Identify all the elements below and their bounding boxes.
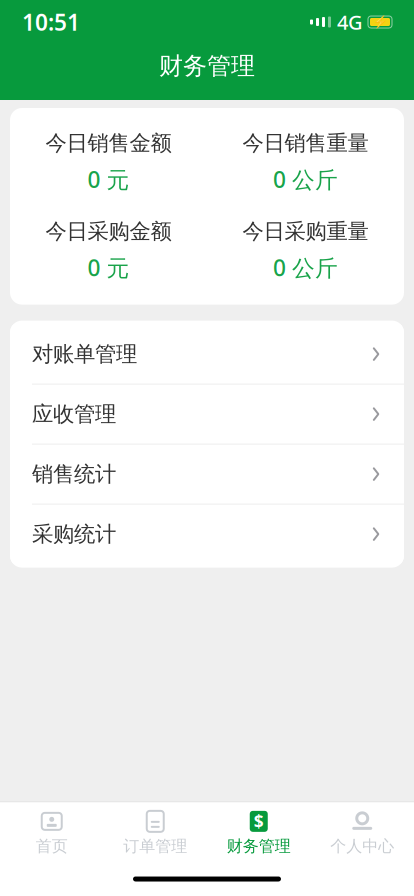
staticText: 应收管理 bbox=[32, 401, 116, 427]
staticText: 首页 bbox=[36, 836, 68, 856]
button[interactable]: 销售统计 bbox=[10, 444, 404, 504]
staticText: $ bbox=[254, 810, 264, 833]
button[interactable]: $ bbox=[207, 802, 310, 862]
button[interactable]: 对账单管理 bbox=[10, 325, 404, 384]
staticText: 采购统计 bbox=[32, 521, 116, 547]
staticText: 今日采购金额 bbox=[45, 218, 171, 244]
button[interactable]: 订单管理 bbox=[103, 802, 207, 862]
staticText: 今日销售金额 bbox=[45, 130, 171, 156]
staticText: 个人中心 bbox=[330, 836, 394, 856]
staticText: 订单管理 bbox=[123, 836, 187, 856]
staticText: ⚡ bbox=[372, 15, 387, 29]
staticText: 销售统计 bbox=[32, 461, 116, 487]
staticText: 0 元 bbox=[87, 164, 129, 194]
staticText: 4G bbox=[337, 9, 363, 35]
staticText: 0 公斤 bbox=[273, 164, 338, 194]
staticText: 今日销售重量 bbox=[242, 130, 368, 156]
staticText: 今日采购重量 bbox=[242, 218, 368, 244]
staticText: 10:51 bbox=[22, 7, 80, 37]
button[interactable]: 个人中心 bbox=[310, 802, 414, 862]
button[interactable]: 应收管理 bbox=[10, 384, 404, 444]
staticText: 0 元 bbox=[87, 252, 129, 283]
button[interactable]: 采购统计 bbox=[10, 504, 404, 564]
button[interactable]: 首页 bbox=[0, 802, 103, 862]
staticText: 财务管理 bbox=[227, 836, 291, 856]
staticText: 财务管理 bbox=[159, 51, 255, 81]
staticText: 0 公斤 bbox=[273, 252, 338, 283]
staticText: 对账单管理 bbox=[32, 341, 137, 367]
